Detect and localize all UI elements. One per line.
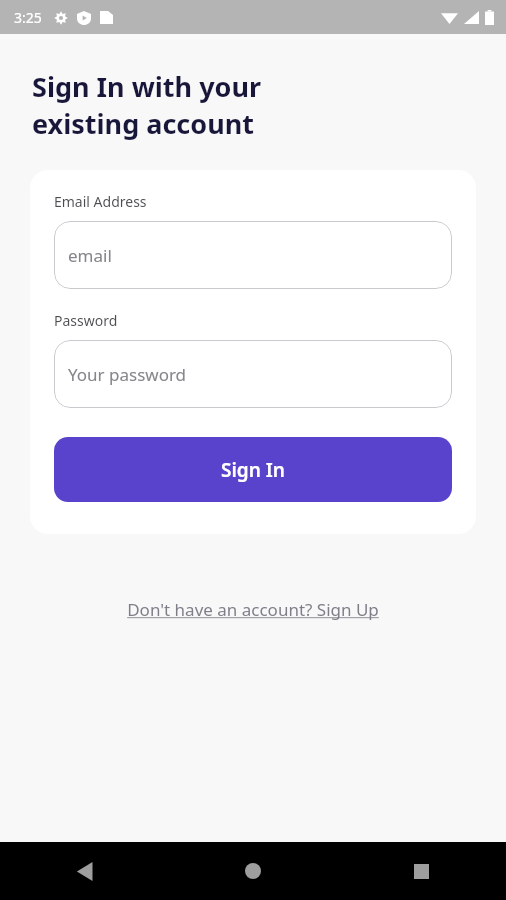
staticText: 3:25	[14, 8, 42, 27]
staticText: email	[68, 244, 112, 267]
staticText: Email Address	[54, 192, 147, 211]
button[interactable]: Sign In	[54, 437, 452, 502]
staticText: Your password	[68, 363, 187, 386]
staticText: Don't have an account? Sign Up	[127, 598, 379, 621]
button[interactable]: Your password	[54, 340, 452, 408]
button[interactable]: email	[54, 221, 452, 289]
staticText: existing account	[32, 105, 254, 142]
staticText: Sign In with your	[32, 68, 262, 105]
staticText: Sign In	[221, 457, 285, 483]
staticText: Password	[54, 311, 118, 330]
button[interactable]: Back	[0, 842, 168, 900]
button[interactable]: Recent apps	[337, 842, 506, 900]
button[interactable]: Don't have an account? Sign Up	[119, 592, 387, 627]
button[interactable]: Home	[168, 842, 337, 900]
